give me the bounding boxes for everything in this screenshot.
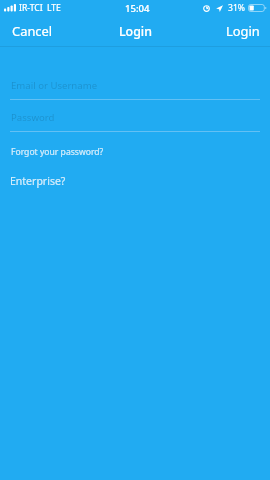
button[interactable]: Login [216,17,270,45]
button[interactable]: Email or Username [0,79,270,100]
staticText: Forgot your password? [11,146,104,158]
button[interactable]: Enterprise? [0,171,77,191]
other: Alarm [203,5,210,12]
staticText: 31% [228,2,245,14]
other: Location [216,5,223,12]
staticText: Login [119,23,152,40]
staticText: 15:04 [125,2,150,15]
button[interactable]: Cancel [0,17,65,45]
button[interactable]: Password [0,111,270,132]
other: Battery 31 percent [248,4,267,12]
staticText: LTE [47,2,61,14]
staticText: Email or Username [11,79,98,92]
staticText: Password [11,111,55,124]
staticText: Cancel [12,22,53,40]
staticText: IR-TCI [19,2,43,14]
staticText: Login [226,22,260,40]
staticText: Enterprise? [10,174,66,188]
button[interactable]: Forgot your password? [0,143,115,161]
